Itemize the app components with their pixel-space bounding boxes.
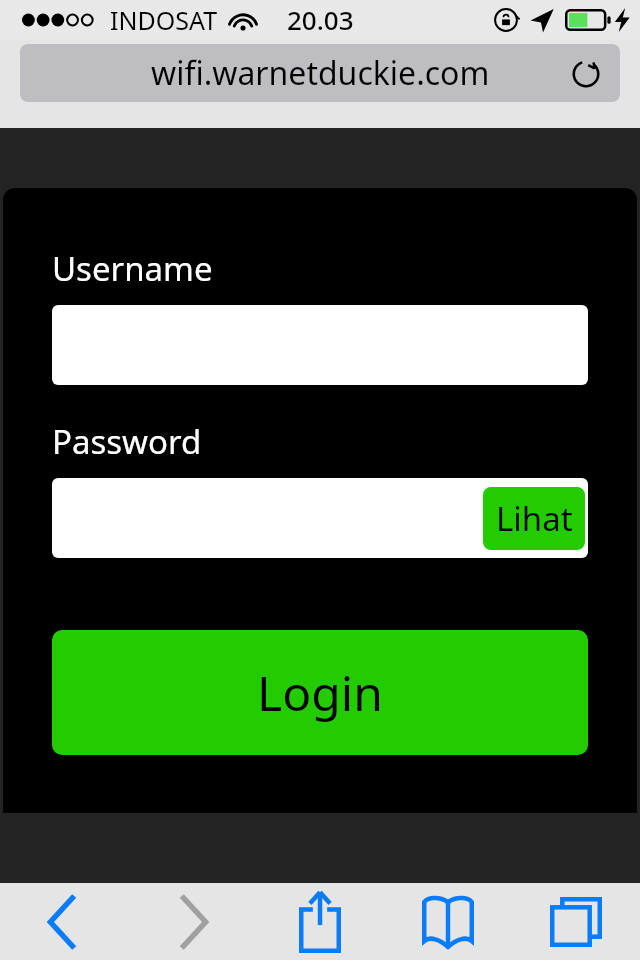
button[interactable]: Share bbox=[256, 883, 384, 960]
button[interactable]: Lihat bbox=[52, 478, 588, 558]
staticText: Login bbox=[257, 660, 383, 725]
button[interactable]: wifi.warnetduckie.com bbox=[20, 44, 620, 102]
staticText: Username bbox=[52, 246, 213, 291]
button[interactable]: Login bbox=[52, 630, 588, 755]
button[interactable]: Bookmarks bbox=[384, 883, 512, 960]
button[interactable] bbox=[52, 305, 588, 385]
button[interactable]: Tabs bbox=[512, 883, 640, 960]
button[interactable]: Back bbox=[0, 883, 128, 960]
staticText: INDOSAT bbox=[110, 3, 218, 37]
staticText: wifi.warnetduckie.com bbox=[151, 51, 490, 95]
staticText: 20.03 bbox=[287, 2, 354, 37]
button[interactable]: Reload bbox=[566, 53, 606, 93]
staticText: Lihat bbox=[496, 496, 573, 541]
button[interactable]: Lihat bbox=[483, 487, 585, 550]
staticText: Password bbox=[52, 419, 202, 464]
button[interactable]: Forward bbox=[128, 883, 256, 960]
